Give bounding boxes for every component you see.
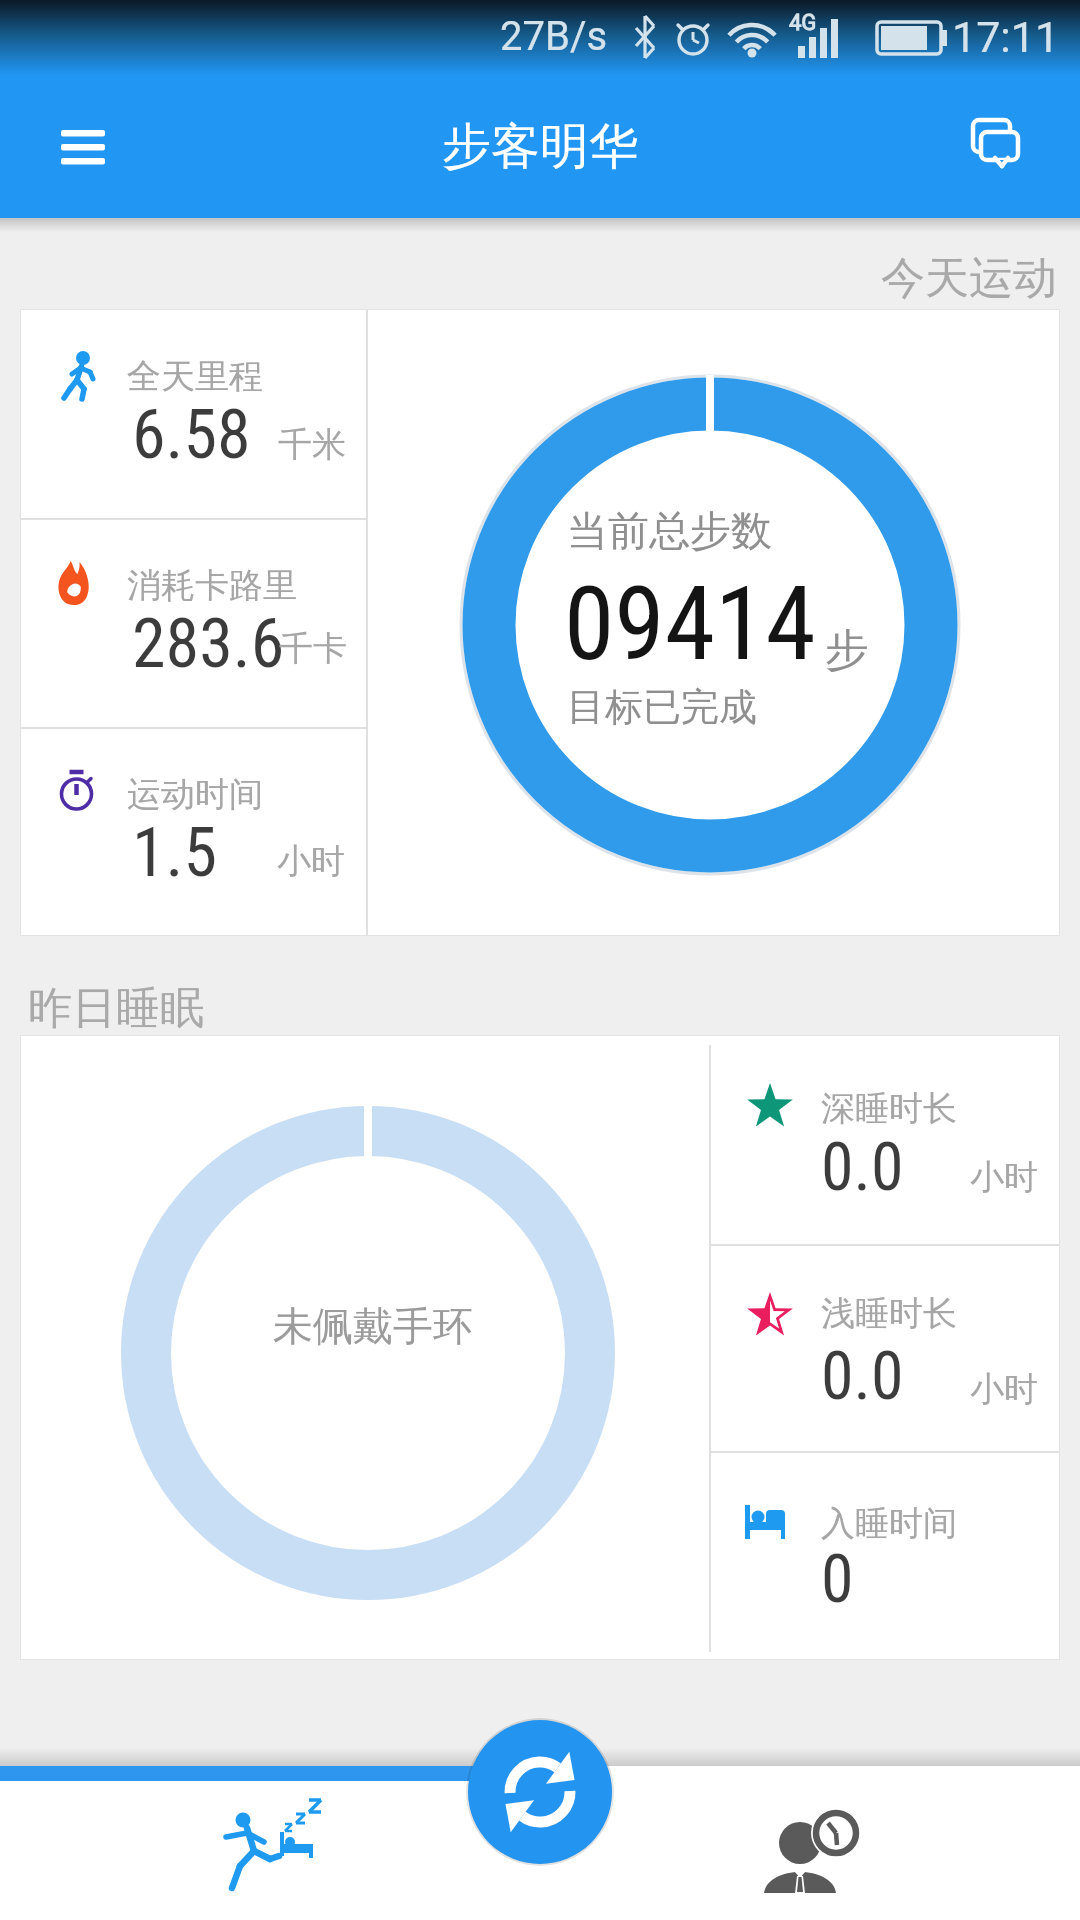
- staticText: 昨日睡眠: [28, 981, 204, 1036]
- staticText: 运动时间: [127, 773, 263, 816]
- staticText: 全天里程: [127, 355, 263, 398]
- button[interactable]: [466, 1718, 614, 1866]
- staticText: 17:11: [952, 12, 1060, 62]
- button[interactable]: 未佩戴手环: [20, 1035, 1060, 1660]
- staticText: 0.0: [821, 1129, 904, 1206]
- button[interactable]: [950, 113, 1030, 183]
- staticText: 0: [821, 1541, 854, 1618]
- staticText: 深睡时长: [821, 1087, 957, 1130]
- button[interactable]: [48, 115, 118, 177]
- staticText: 小时: [970, 1368, 1038, 1411]
- staticText: 小时: [277, 840, 345, 883]
- staticText: 小时: [970, 1156, 1038, 1199]
- staticText: 入睡时间: [821, 1502, 957, 1545]
- staticText: 千米: [278, 423, 346, 466]
- staticText: 千卡: [279, 627, 347, 670]
- staticText: 今天运动: [881, 251, 1057, 306]
- staticText: 1.5: [132, 813, 218, 893]
- button[interactable]: [720, 1786, 890, 1916]
- button[interactable]: 全天里程: [20, 309, 1060, 936]
- staticText: 消耗卡路里: [127, 564, 297, 607]
- staticText: 当前总步数: [567, 506, 772, 558]
- button[interactable]: [190, 1786, 360, 1916]
- staticText: 283.6: [132, 604, 285, 684]
- staticText: 0.0: [821, 1338, 904, 1415]
- staticText: 步: [825, 623, 869, 678]
- staticText: 未佩戴手环: [273, 1301, 473, 1351]
- staticText: 浅睡时长: [821, 1292, 957, 1335]
- staticText: 目标已完成: [567, 683, 757, 731]
- staticText: 4G: [789, 10, 817, 36]
- staticText: 步客明华: [442, 116, 638, 178]
- staticText: 27B/s: [500, 13, 608, 60]
- staticText: 09414: [564, 564, 816, 684]
- staticText: 6.58: [132, 395, 251, 475]
